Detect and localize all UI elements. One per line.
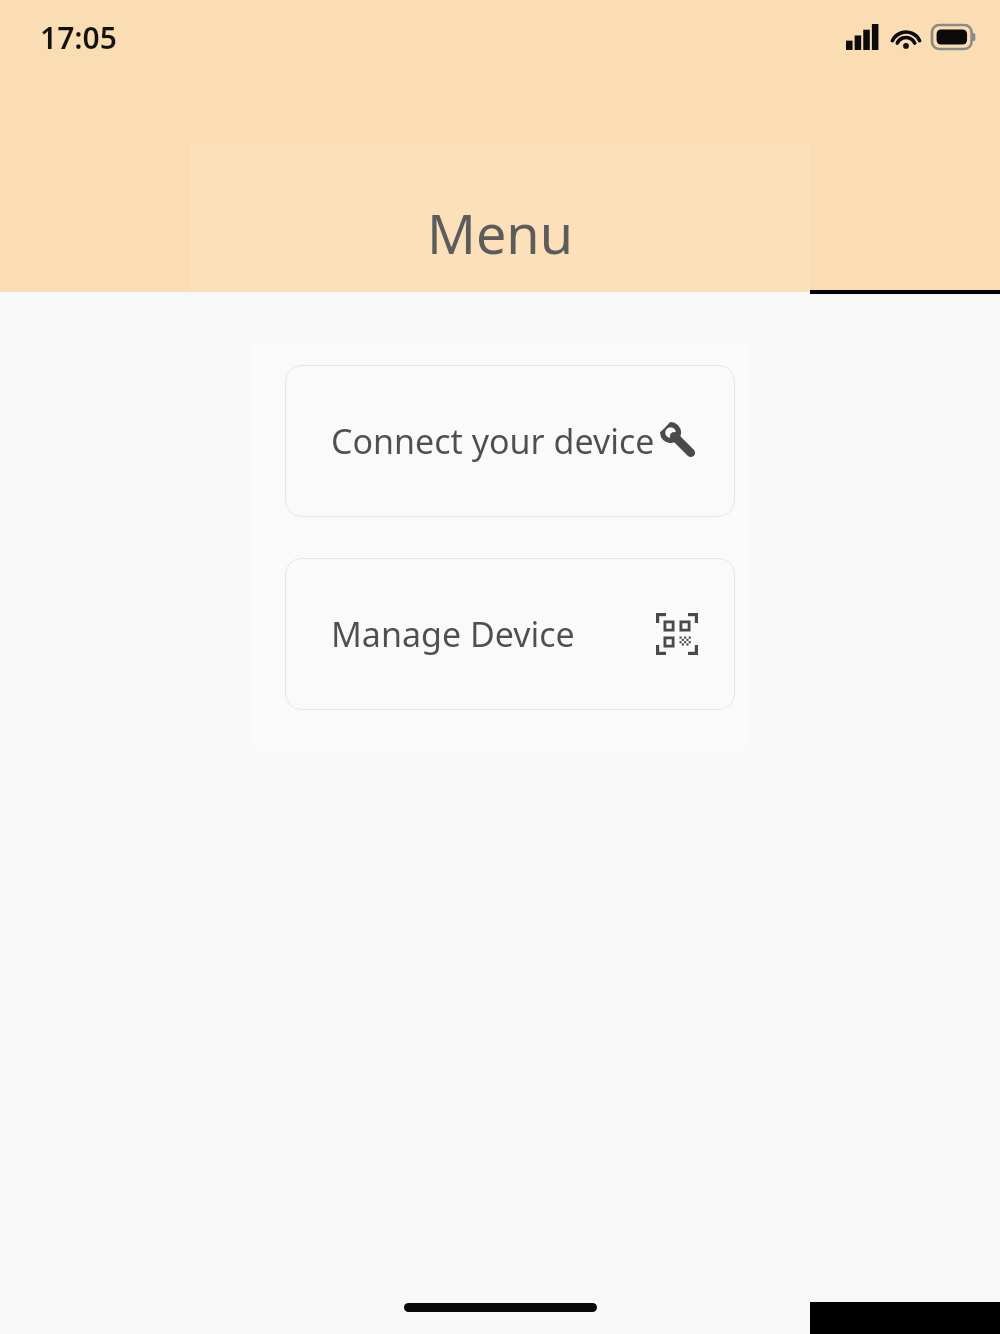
button[interactable]: Manage device xyxy=(285,558,735,710)
staticText: Connect your device xyxy=(331,418,655,464)
staticText: Menu xyxy=(0,196,1000,270)
staticText: Manage Device xyxy=(331,611,575,657)
button[interactable]: Connect your device xyxy=(285,365,735,517)
staticText: 17:05 xyxy=(40,17,117,58)
